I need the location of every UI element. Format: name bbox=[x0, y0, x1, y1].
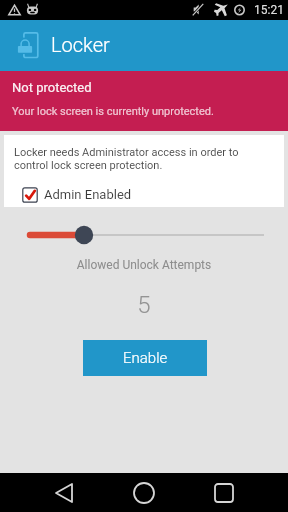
button[interactable]: Unlock attempts slider bbox=[0, 223, 288, 247]
staticText: Admin Enabled bbox=[44, 187, 132, 202]
staticText: 15:21 bbox=[254, 3, 284, 17]
staticText: Allowed Unlock Attempts bbox=[0, 258, 288, 276]
staticText: Locker needs Administrator access in ord… bbox=[14, 146, 239, 159]
button[interactable]: Admin Enabled bbox=[18, 183, 134, 206]
button[interactable]: Home bbox=[124, 473, 164, 512]
staticText: control lock screen protection. bbox=[14, 159, 163, 172]
staticText: 5 bbox=[0, 291, 288, 321]
staticText: Not protected bbox=[12, 80, 92, 95]
button[interactable]: Back bbox=[44, 473, 84, 512]
button[interactable]: Recent apps bbox=[204, 473, 244, 512]
staticText: Your lock screen is currently unprotecte… bbox=[12, 105, 214, 118]
staticText: Locker bbox=[51, 33, 110, 56]
button[interactable]: Enable bbox=[83, 340, 207, 376]
staticText: Enable bbox=[123, 349, 168, 367]
